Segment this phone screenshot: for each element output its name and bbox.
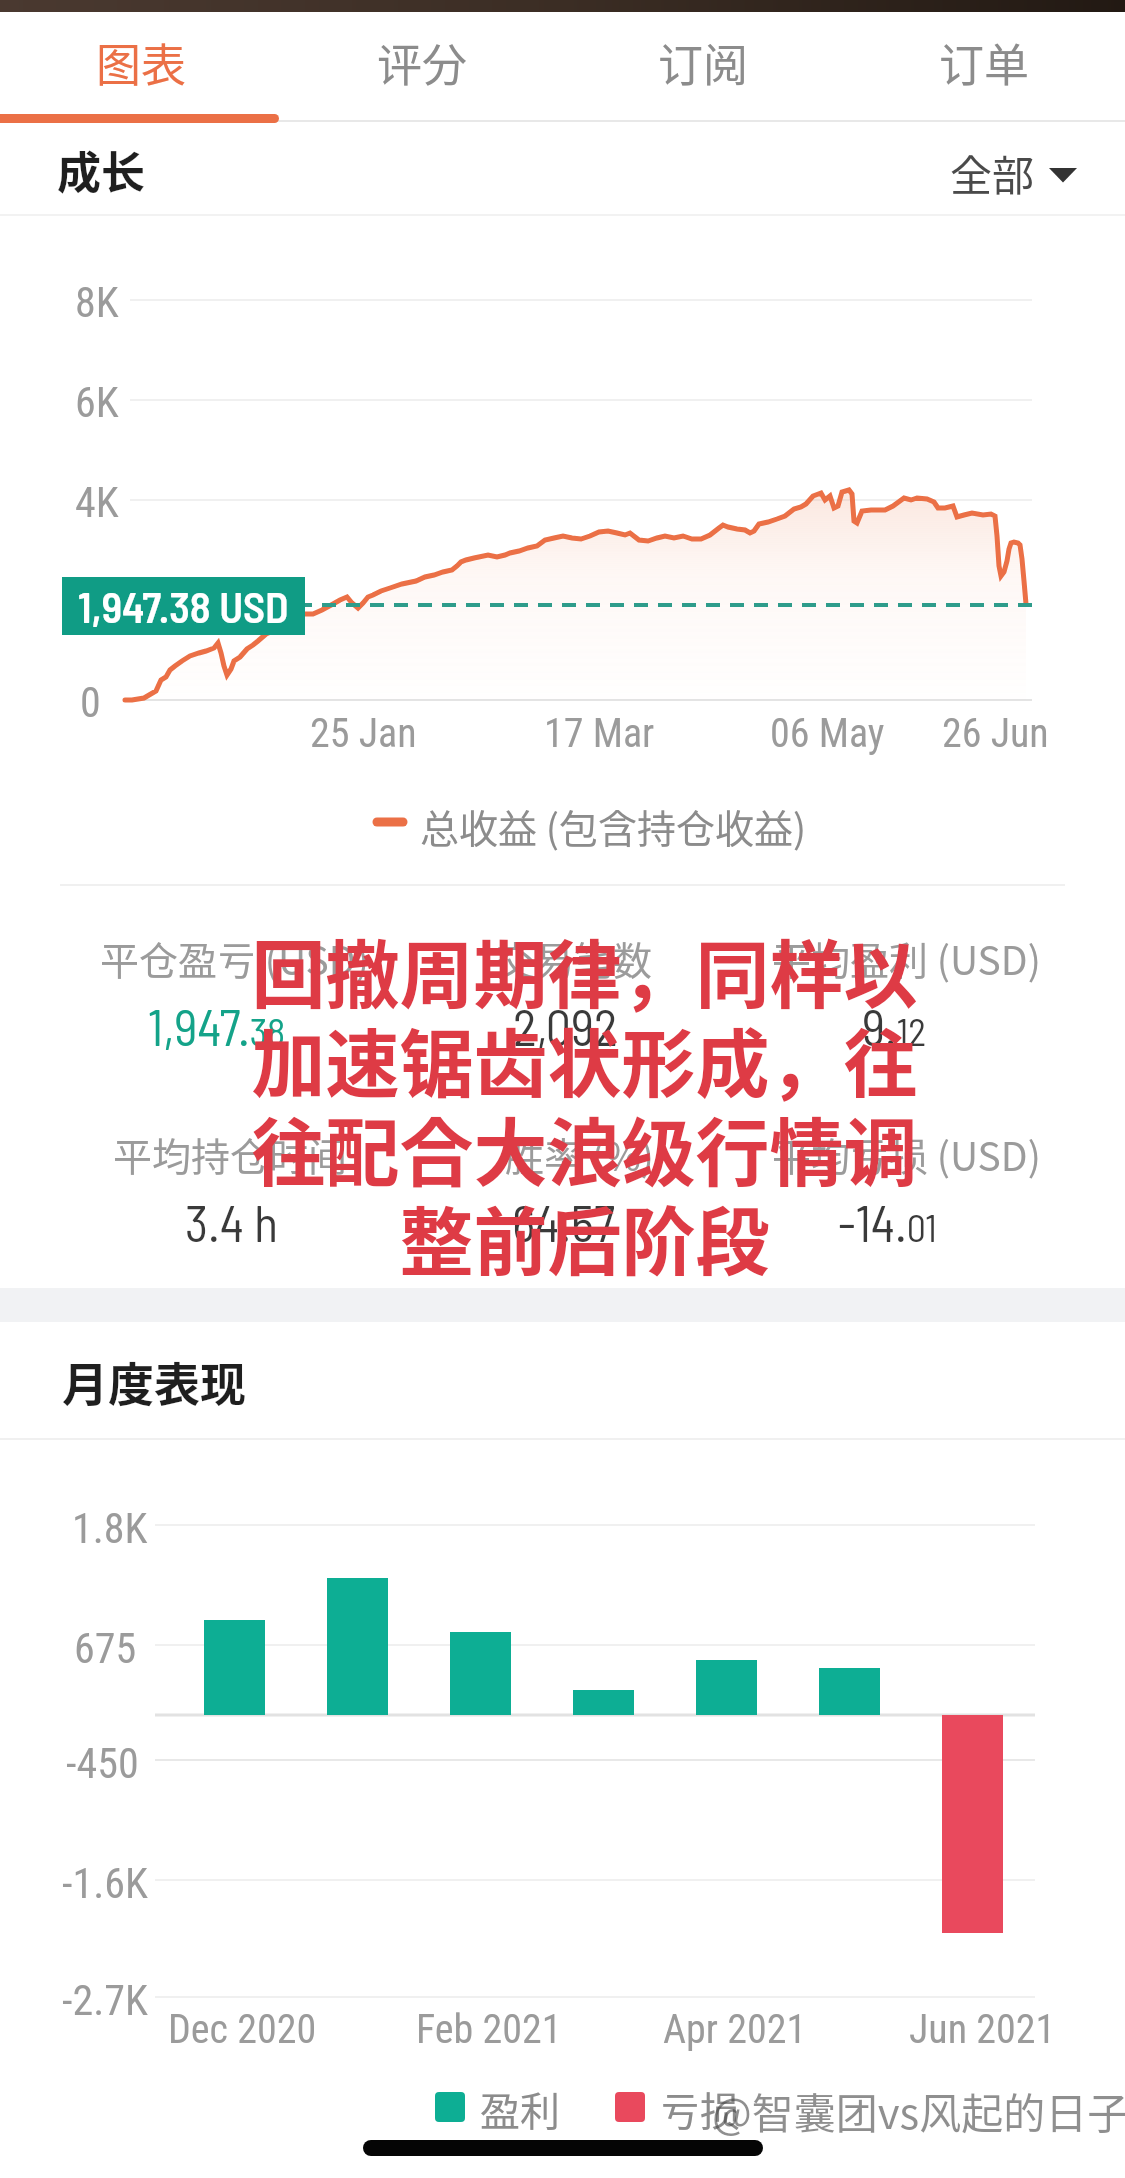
staticText: 图表 <box>96 30 187 95</box>
staticText: 订阅 <box>658 30 749 95</box>
staticText: -2.7K <box>62 1976 148 2025</box>
staticText: 成长 <box>57 138 145 202</box>
staticText: Dec 2020 <box>168 2006 317 2053</box>
staticText: 26 Jun <box>942 710 1049 757</box>
staticText: 8K <box>75 278 119 327</box>
staticText: 64.57 <box>512 1192 615 1252</box>
staticText: 0 <box>80 678 101 727</box>
staticText: 2,092 <box>513 996 618 1056</box>
staticText: 675 <box>74 1624 137 1673</box>
staticText: 平均持仓时间 <box>113 1126 348 1182</box>
staticText: 3.4 h <box>185 1192 279 1252</box>
staticText: 平仓盈亏 (USD) <box>100 930 369 986</box>
button[interactable]: 评分 <box>282 12 563 112</box>
staticText: 订单 <box>939 30 1030 95</box>
staticText: 6K <box>75 378 119 427</box>
staticText: 交易笔数 <box>496 930 653 986</box>
staticText: 1.8K <box>72 1504 148 1553</box>
staticText: 4K <box>75 478 119 527</box>
staticText: Apr 2021 <box>663 2006 807 2053</box>
staticText: Jun 2021 <box>909 2006 1056 2053</box>
staticText: 1,947.38 USD <box>78 580 289 632</box>
staticText: 全部 <box>950 142 1035 203</box>
staticText: -450 <box>66 1739 139 1788</box>
staticText: 回撤周期律，同样以 加速锯齿状形成，往 往配合大浪级行情调 整前后阶段 <box>22 916 1125 1291</box>
staticText: 平均亏损 (USD) <box>772 1126 1041 1182</box>
staticText: 盈利 <box>480 2080 560 2138</box>
staticText: @智囊团vs风起的日子 <box>712 2080 1125 2141</box>
staticText: 总收益 (包含持仓收益) <box>420 798 807 854</box>
staticText: 月度表现 <box>62 1348 246 1415</box>
button[interactable]: 订单 <box>844 12 1125 112</box>
button[interactable]: 图表 <box>0 12 282 112</box>
staticText: 1,947.38 <box>148 996 286 1056</box>
button[interactable]: 订阅 <box>563 12 844 112</box>
staticText: 25 Jan <box>310 710 417 757</box>
staticText: 胜率 (%) <box>505 1126 655 1182</box>
staticText: 06 May <box>770 710 885 757</box>
staticText: 平均盈利 (USD) <box>772 930 1041 986</box>
staticText: -1.6K <box>62 1859 148 1908</box>
staticText: Feb 2021 <box>416 2006 562 2053</box>
staticText: -14.01 <box>838 1192 937 1252</box>
staticText: 9.12 <box>862 996 927 1056</box>
button[interactable]: 全部 <box>950 142 1077 203</box>
staticText: 17 Mar <box>544 710 655 757</box>
staticText: 评分 <box>377 30 468 95</box>
staticText: 亏损 <box>660 2080 740 2138</box>
